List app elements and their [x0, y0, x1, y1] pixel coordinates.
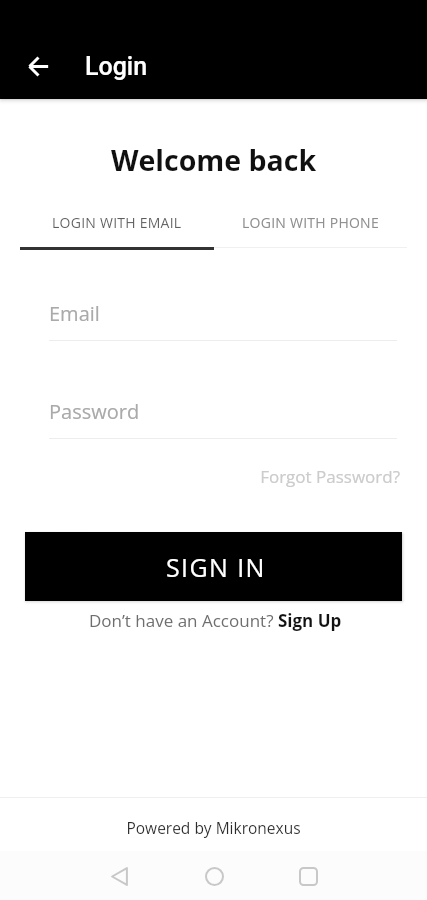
staticText: LOGIN WITH EMAIL: [52, 213, 182, 232]
button[interactable]: LOGIN WITH EMAIL: [20, 213, 214, 250]
staticText: Welcome back: [0, 141, 427, 180]
staticText: Login: [85, 52, 148, 81]
button[interactable]: SIGN IN: [25, 532, 402, 601]
staticText: LOGIN WITH PHONE: [242, 213, 379, 232]
button[interactable]: Back: [14, 42, 62, 90]
staticText: Email: [49, 300, 100, 327]
button[interactable]: Don’t have an Account? Sign Up: [89, 609, 342, 632]
staticText: Password: [49, 398, 140, 425]
staticText: Powered by Mikronexus: [0, 817, 427, 838]
staticText: SIGN IN: [166, 550, 266, 584]
button[interactable]: Home: [190, 852, 238, 900]
button[interactable]: Recent apps: [284, 852, 332, 900]
button[interactable]: Forgot Password?: [0, 465, 400, 488]
button[interactable]: Back: [95, 852, 143, 900]
button[interactable]: LOGIN WITH PHONE: [214, 213, 407, 248]
